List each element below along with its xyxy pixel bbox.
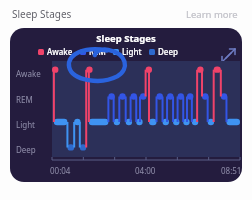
staticText: Awake bbox=[16, 68, 41, 79]
staticText: Light bbox=[16, 119, 36, 130]
staticText: Awake bbox=[47, 46, 73, 57]
staticText: Deep bbox=[158, 46, 178, 57]
staticText: 08:51 bbox=[221, 165, 242, 176]
staticText: Sleep Stages bbox=[12, 7, 72, 21]
button[interactable]: REM bbox=[80, 46, 106, 57]
button[interactable]: Learn more bbox=[184, 6, 240, 23]
staticText: Light bbox=[122, 46, 142, 57]
button[interactable]: Deep bbox=[149, 46, 178, 57]
staticText: Sleep Stages bbox=[96, 32, 156, 45]
staticText: Deep bbox=[16, 144, 36, 155]
staticText: Learn more bbox=[186, 8, 238, 21]
staticText: 00:04 bbox=[50, 165, 71, 176]
button[interactable]: Expand chart bbox=[218, 43, 238, 63]
staticText: REM bbox=[89, 46, 106, 57]
button[interactable]: Light bbox=[113, 46, 142, 57]
staticText: REM bbox=[16, 94, 33, 105]
button[interactable]: Awake bbox=[38, 46, 73, 57]
staticText: 04:00 bbox=[135, 165, 156, 176]
